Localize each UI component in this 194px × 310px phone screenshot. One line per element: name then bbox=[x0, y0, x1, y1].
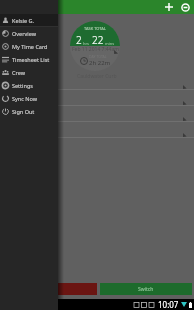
staticText: TASK TOTAL bbox=[84, 26, 106, 31]
staticText: 2h 22m bbox=[89, 59, 111, 67]
staticText: mins bbox=[105, 41, 115, 46]
staticText: Settings bbox=[12, 82, 33, 89]
button[interactable]: Timesheet List bbox=[0, 53, 58, 66]
staticText: Kelsie G. bbox=[12, 17, 34, 24]
staticText: Switch bbox=[138, 286, 154, 293]
button[interactable]: Settings bbox=[0, 79, 58, 92]
button[interactable]: My Time Card bbox=[0, 40, 58, 53]
staticText: Overview bbox=[12, 30, 36, 37]
button[interactable]: Crew bbox=[0, 66, 58, 79]
staticText: Sign Out bbox=[12, 108, 35, 115]
staticText: hrs bbox=[83, 41, 90, 46]
staticText: Feb 11 2014 7:44am bbox=[72, 46, 119, 53]
staticText: Crew bbox=[12, 69, 25, 76]
staticText: My Time Card bbox=[12, 43, 48, 50]
button[interactable]: Switch bbox=[100, 283, 192, 295]
button[interactable] bbox=[0, 122, 194, 138]
staticText: 22 bbox=[92, 33, 104, 47]
staticText: 2 bbox=[76, 33, 82, 47]
staticText: DAY TOTAL bbox=[89, 54, 107, 59]
button[interactable]: Add bbox=[161, 0, 177, 14]
button[interactable]: Sync Now bbox=[0, 92, 58, 105]
staticText: Timesheet List bbox=[12, 56, 50, 63]
staticText: 10:07 bbox=[158, 299, 179, 310]
button[interactable]: Clock out bbox=[58, 283, 97, 295]
button[interactable] bbox=[0, 74, 194, 90]
button[interactable] bbox=[0, 90, 194, 106]
button[interactable] bbox=[0, 106, 194, 122]
button[interactable]: Overview bbox=[0, 27, 58, 40]
button[interactable]: Sign Out bbox=[0, 105, 58, 118]
button[interactable]: Clock out bbox=[177, 0, 193, 14]
staticText: Sync Now bbox=[12, 95, 38, 102]
